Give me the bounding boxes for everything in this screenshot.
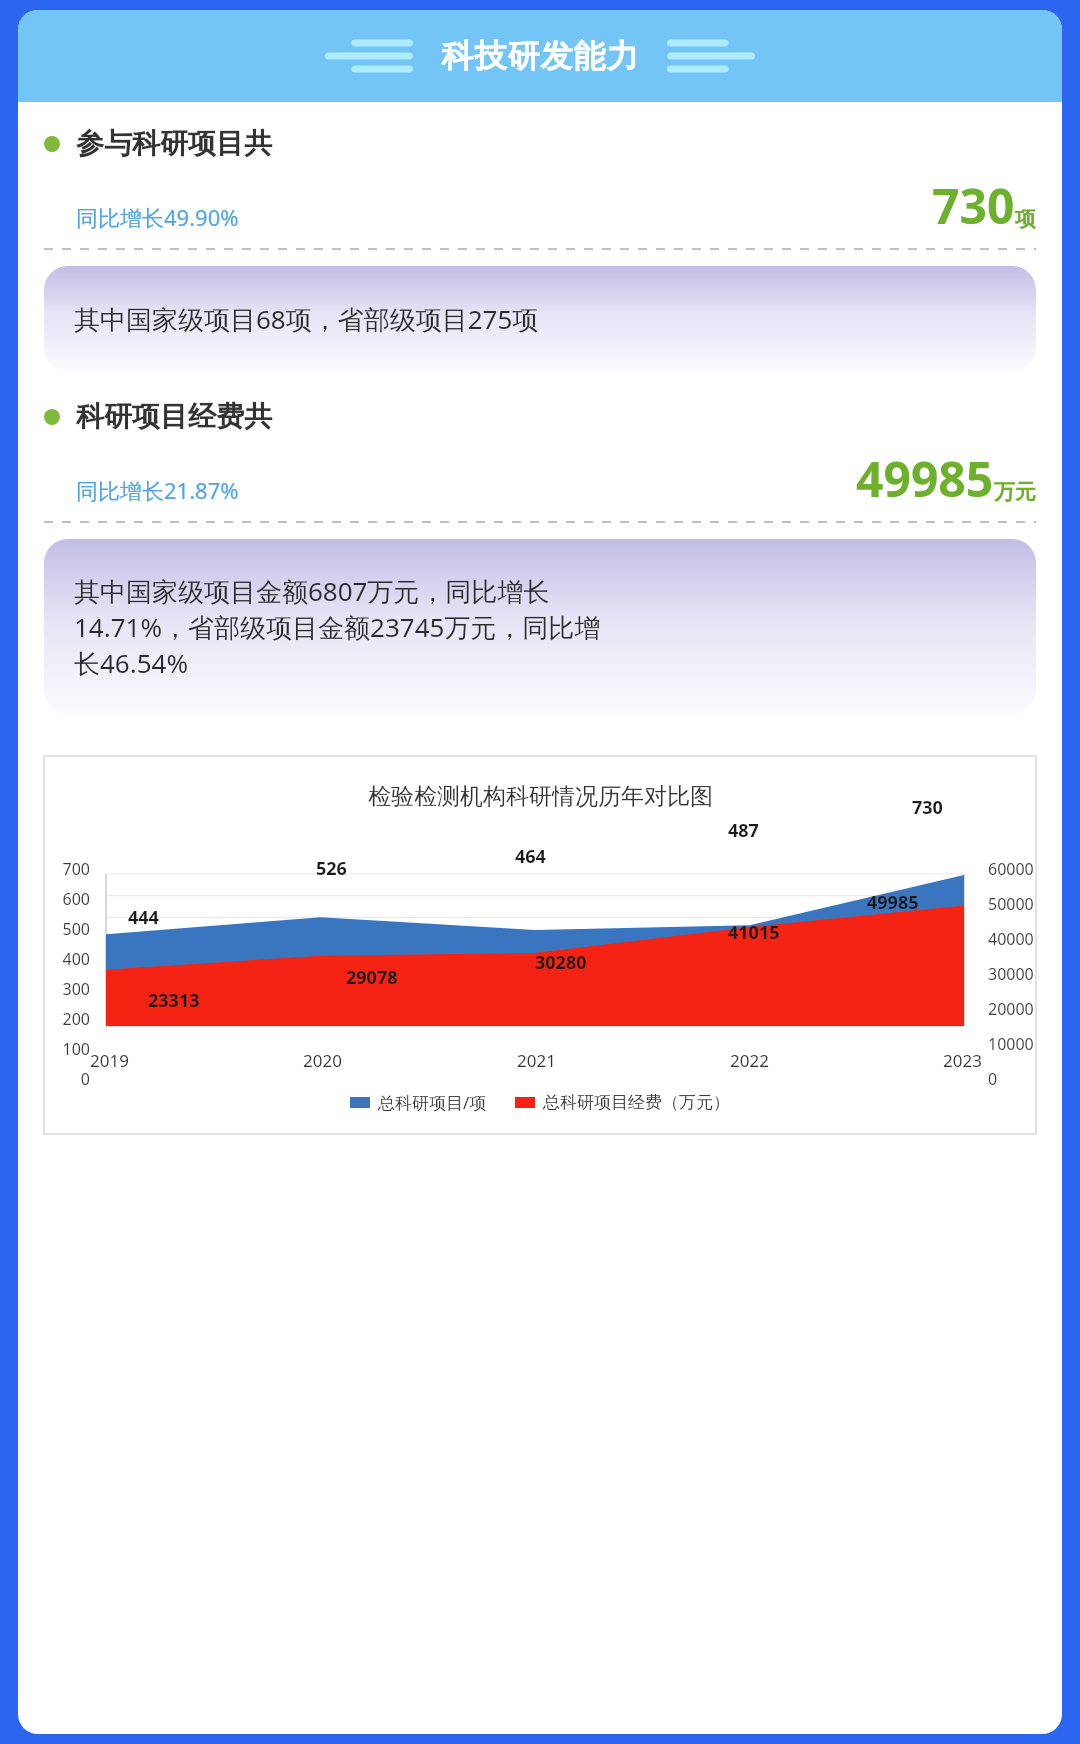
staticText: 2021 — [517, 1049, 556, 1072]
staticText: 400 — [46, 948, 90, 970]
staticText: 730 — [932, 173, 1015, 238]
staticText: 30280 — [535, 950, 587, 975]
staticText: 730 — [912, 795, 943, 820]
button[interactable]: 其中国家级项目68项，省部级项目275项 — [44, 266, 1036, 371]
staticText: 20000 — [988, 998, 1034, 1020]
staticText: 60000 — [988, 858, 1034, 880]
staticText: 487 — [728, 818, 759, 843]
staticText: 30000 — [988, 963, 1034, 985]
staticText: 29078 — [346, 965, 398, 990]
staticText: 600 — [46, 888, 90, 910]
button[interactable]: 其中国家级项目金额6807万元，同比增长 — [44, 539, 1036, 714]
staticText: 0 — [46, 1068, 90, 1090]
staticText: 464 — [515, 844, 546, 869]
staticText: 总科研项目经费（万元） — [543, 1092, 730, 1113]
staticText: 科研项目经费共 — [76, 399, 272, 434]
staticText: 其中国家级项目金额6807万元，同比增长 — [74, 573, 550, 609]
staticText: 总科研项目/项 — [378, 1091, 487, 1114]
staticText: 长46.54% — [74, 645, 189, 681]
staticText: 40000 — [988, 928, 1034, 950]
staticText: 300 — [46, 978, 90, 1000]
staticText: 参与科研项目共 — [76, 126, 272, 161]
staticText: 49985 — [867, 890, 919, 915]
staticText: 10000 — [988, 1033, 1034, 1055]
staticText: 检验检测机构科研情况历年对比图 — [368, 782, 713, 811]
staticText: 50000 — [988, 893, 1034, 915]
staticText: 700 — [46, 858, 90, 880]
staticText: 同比增长21.87% — [76, 475, 239, 505]
staticText: 2022 — [730, 1049, 769, 1072]
staticText: 14.71%，省部级项目金额23745万元，同比增 — [74, 609, 601, 645]
staticText: 2020 — [303, 1049, 342, 1072]
staticText: 444 — [128, 905, 159, 930]
staticText: 万元 — [994, 479, 1036, 505]
staticText: 100 — [46, 1038, 90, 1060]
staticText: 49985 — [856, 446, 994, 511]
staticText: 200 — [46, 1008, 90, 1030]
staticText: 23313 — [148, 988, 200, 1013]
staticText: 科技研发能力 — [441, 36, 639, 76]
staticText: 2023 — [943, 1049, 982, 1072]
staticText: 500 — [46, 918, 90, 940]
staticText: 0 — [988, 1068, 998, 1090]
staticText: 项 — [1015, 206, 1036, 232]
staticText: 526 — [316, 856, 347, 881]
staticText: 同比增长49.90% — [76, 202, 239, 232]
staticText: 41015 — [728, 920, 780, 945]
staticText: 其中国家级项目68项，省部级项目275项 — [74, 301, 539, 337]
staticText: 2019 — [90, 1049, 129, 1072]
